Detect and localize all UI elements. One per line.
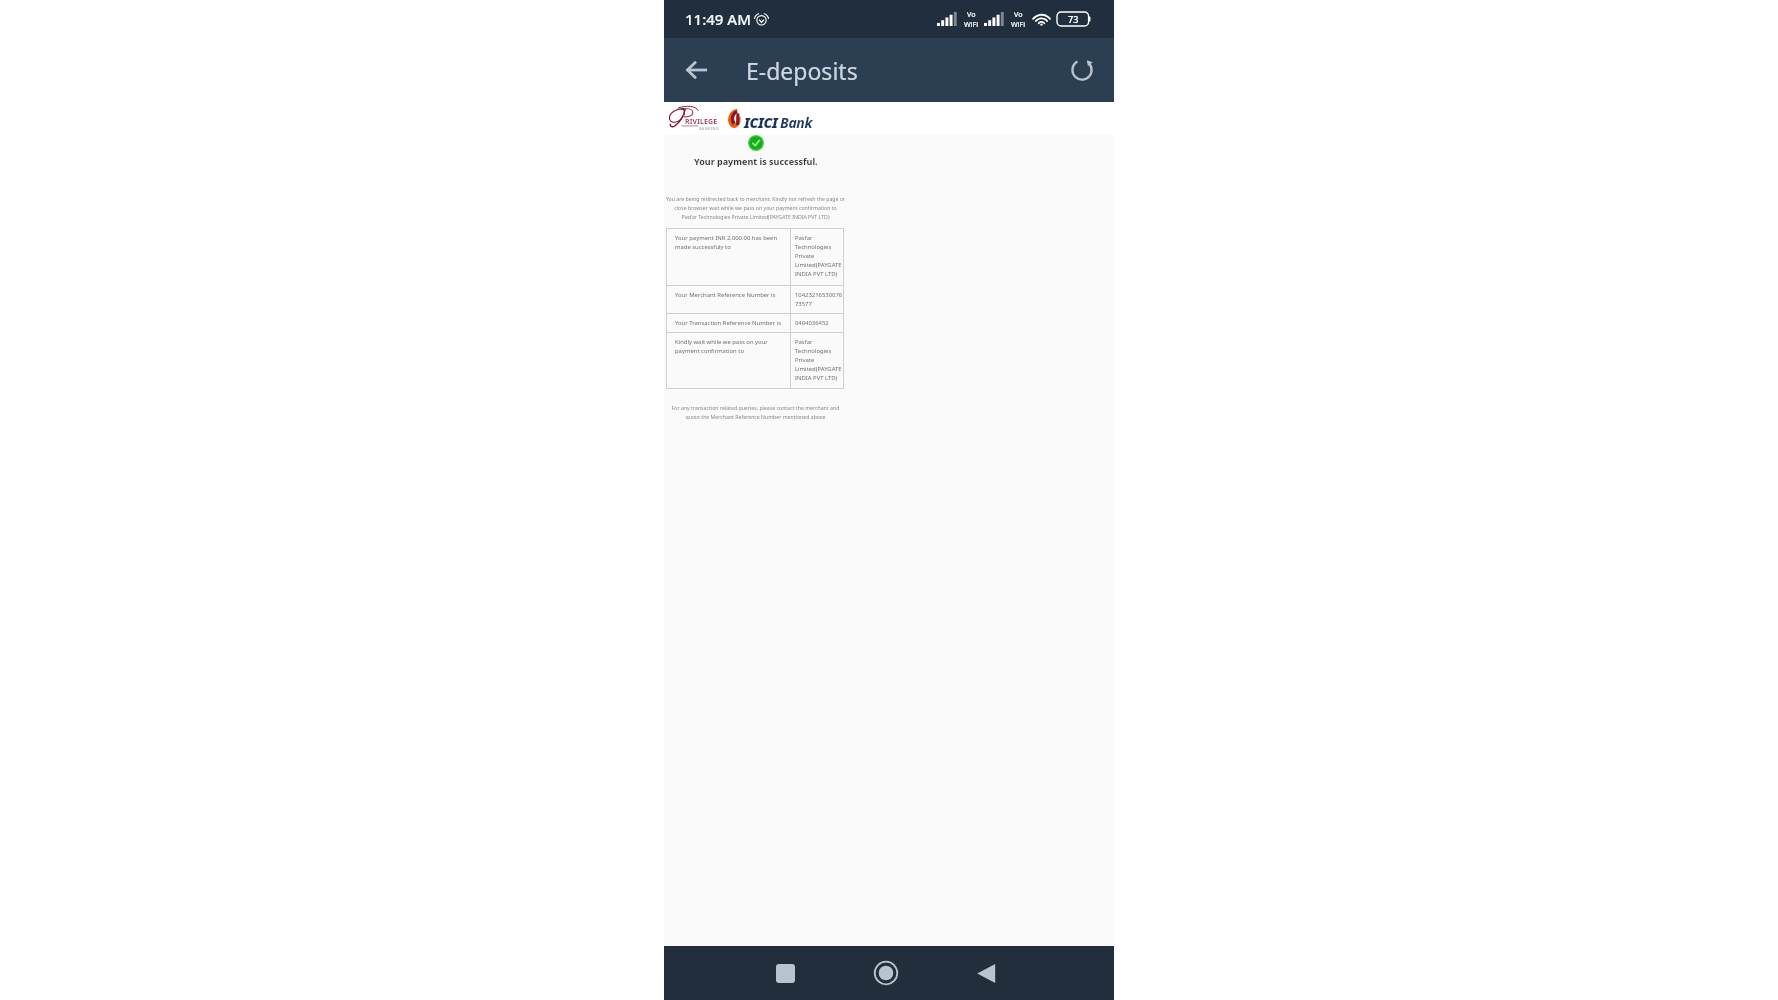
button[interactable]: Home [866, 953, 906, 993]
staticText: 73 [1068, 13, 1079, 25]
staticText: Vo [1014, 9, 1023, 19]
staticText: Pasfar Technologies Private Limited(PAYG… [795, 234, 842, 278]
staticText: Your payment INR 2,000.00 has been made … [675, 234, 778, 251]
staticText: For any transaction related queries, ple… [662, 404, 849, 421]
staticText: E-deposits [746, 55, 858, 86]
button[interactable]: Refresh [1060, 48, 1104, 92]
staticText: WiFi [1011, 19, 1026, 29]
staticText: BANKING [699, 126, 719, 131]
staticText: Kindly wait while we pass on your paymen… [675, 338, 768, 355]
staticText: You are being redirected back to merchan… [662, 195, 849, 221]
button[interactable]: Back [966, 953, 1006, 993]
staticText: ICICI [744, 113, 778, 132]
staticText: WiFi [964, 19, 979, 29]
staticText: Your Transaction Reference Number is [675, 319, 781, 327]
button[interactable]: Back [675, 48, 719, 92]
staticText: 0404036452 [795, 319, 829, 327]
staticText: 11:49 AM [685, 9, 751, 29]
staticText: Your payment is successful. [694, 155, 818, 167]
staticText: Vo [967, 9, 976, 19]
staticText: RIVILEGE [685, 117, 718, 127]
button[interactable]: Recents [765, 953, 805, 993]
staticText: Your Merchant Reference Number is [675, 291, 776, 299]
staticText: Bank [780, 113, 813, 132]
staticText: Pasfar Technologies Private Limited(PAYG… [795, 338, 842, 382]
staticText: 10423216530076 73577 [795, 291, 843, 308]
